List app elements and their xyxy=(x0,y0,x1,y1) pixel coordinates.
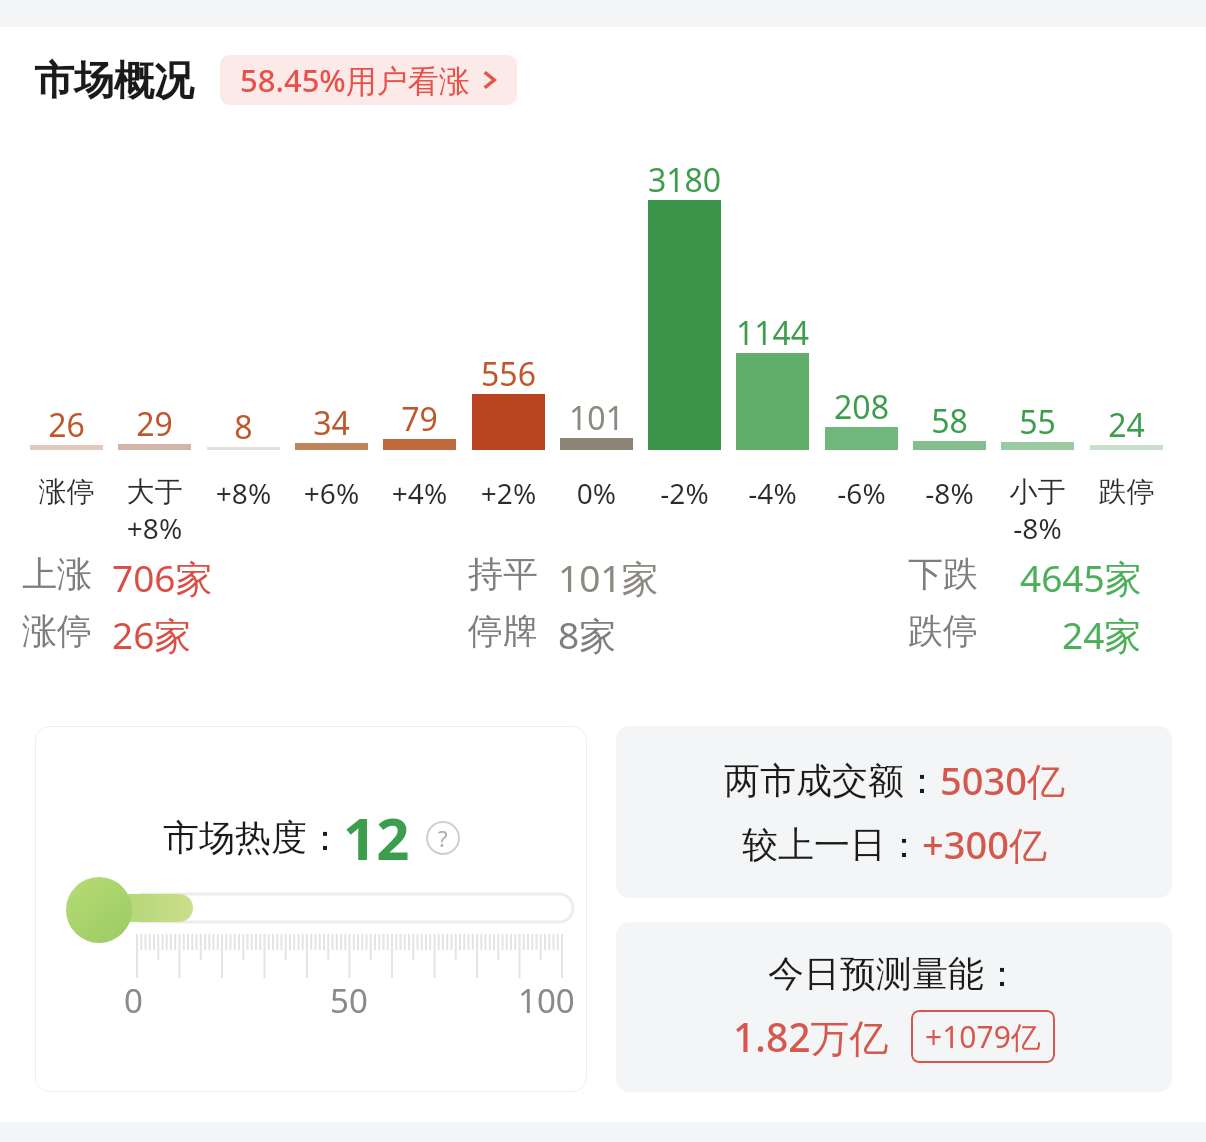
staticText: 今日预测量能： xyxy=(768,951,1020,996)
staticText: 大于 xyxy=(104,474,205,509)
staticText: 50 xyxy=(330,978,368,1023)
staticText: 55 xyxy=(987,400,1088,444)
staticText: 208 xyxy=(811,385,912,429)
staticText: 1.82万亿 xyxy=(733,1010,889,1063)
staticText: 下跌 xyxy=(908,552,978,596)
staticText: 58 xyxy=(899,399,1000,443)
staticText: 跌停 xyxy=(908,609,978,653)
staticText: 101 xyxy=(546,396,647,440)
staticText: ? xyxy=(438,823,448,853)
staticText: 持平 xyxy=(468,552,538,596)
staticText: 26家 xyxy=(112,609,192,660)
staticText: 8家 xyxy=(558,609,617,660)
staticText: -8% xyxy=(987,509,1088,547)
staticText: 706家 xyxy=(112,552,213,603)
staticText: +1079亿 xyxy=(925,1016,1041,1057)
staticText: 24家 xyxy=(1062,609,1142,660)
button[interactable]: 58.45%用户看涨 xyxy=(220,55,517,105)
staticText: 0 xyxy=(124,978,143,1023)
staticText: -6% xyxy=(811,474,912,512)
staticText: 12 xyxy=(343,798,410,877)
staticText: 0% xyxy=(546,474,647,512)
staticText: 101家 xyxy=(558,552,659,603)
staticText: +2% xyxy=(458,474,559,512)
staticText: 556 xyxy=(458,352,559,396)
staticText: 79 xyxy=(369,397,470,441)
staticText: 市场概况 xyxy=(34,55,194,105)
staticText: 34 xyxy=(281,401,382,445)
staticText: -4% xyxy=(722,474,823,512)
staticText: 市场热度： xyxy=(163,815,343,860)
staticText: 停牌 xyxy=(468,609,538,653)
staticText: 1144 xyxy=(722,311,823,355)
staticText: 5030亿 xyxy=(940,754,1065,806)
staticText: 26 xyxy=(16,403,117,447)
staticText: +8% xyxy=(104,509,205,547)
staticText: 上涨 xyxy=(22,552,92,596)
staticText: 24 xyxy=(1076,403,1177,447)
button[interactable]: 帮助说明 xyxy=(426,821,460,855)
staticText: 两市成交额： xyxy=(724,758,940,803)
staticText: 小于 xyxy=(987,474,1088,509)
staticText: 29 xyxy=(104,402,205,446)
staticText: -2% xyxy=(634,474,735,512)
button[interactable]: 两市成交额： xyxy=(616,726,1172,898)
staticText: 跌停 xyxy=(1076,474,1177,509)
staticText: 3180 xyxy=(634,158,735,202)
button[interactable]: 今日预测量能： xyxy=(616,922,1172,1092)
button[interactable]: 市场热度： xyxy=(35,726,587,1092)
staticText: 涨停 xyxy=(22,609,92,653)
staticText: 4645家 xyxy=(1020,552,1142,603)
staticText: +4% xyxy=(369,474,470,512)
staticText: 较上一日： xyxy=(742,822,922,867)
staticText: 58.45%用户看涨 xyxy=(240,59,470,101)
staticText: -8% xyxy=(899,474,1000,512)
staticText: 涨停 xyxy=(16,474,117,509)
staticText: +8% xyxy=(193,474,294,512)
staticText: 100 xyxy=(518,978,575,1023)
staticText: +300亿 xyxy=(922,818,1047,870)
staticText: +6% xyxy=(281,474,382,512)
staticText: 8 xyxy=(193,405,294,449)
